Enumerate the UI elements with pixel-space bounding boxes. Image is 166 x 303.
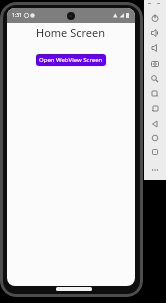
button[interactable] (149, 103, 161, 115)
button[interactable] (149, 58, 161, 70)
button[interactable] (149, 132, 161, 144)
button[interactable] (149, 146, 161, 158)
button[interactable]: Open WebView Screen (36, 54, 106, 66)
button[interactable] (149, 88, 161, 100)
staticText: 1:31 (12, 12, 22, 19)
button[interactable] (149, 164, 161, 176)
button[interactable] (149, 12, 161, 24)
staticText: Home Screen (36, 25, 106, 40)
staticText: Open WebView Screen (39, 56, 103, 64)
button[interactable] (149, 27, 161, 39)
button[interactable] (149, 118, 161, 130)
button[interactable] (149, 73, 161, 85)
button[interactable] (149, 42, 161, 54)
